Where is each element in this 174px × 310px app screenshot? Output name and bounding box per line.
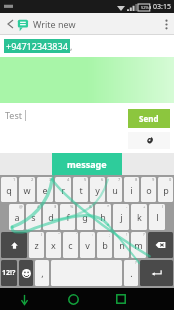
staticText: 6 xyxy=(101,177,104,182)
button[interactable]: . xyxy=(124,260,138,286)
button[interactable]: d xyxy=(43,204,58,230)
button[interactable]: a xyxy=(9,204,24,230)
staticText: % xyxy=(70,204,74,209)
staticText: i xyxy=(130,184,133,196)
staticText: 12!? xyxy=(2,268,16,278)
button[interactable]: p xyxy=(158,177,173,202)
staticText: k xyxy=(137,211,142,223)
staticText: 7 xyxy=(118,177,121,182)
button[interactable]: m xyxy=(131,232,146,258)
button[interactable]: u xyxy=(107,177,122,202)
staticText: Send xyxy=(139,113,159,124)
button[interactable]: , xyxy=(35,260,49,286)
button[interactable]: t xyxy=(73,177,88,202)
button[interactable]: j xyxy=(113,204,129,230)
button[interactable]: s xyxy=(26,204,41,230)
button[interactable]: z xyxy=(29,232,44,258)
staticText: m xyxy=(134,239,143,251)
button[interactable]: c xyxy=(63,232,78,258)
staticText: p xyxy=(163,184,169,196)
staticText: g xyxy=(82,211,88,223)
staticText: q xyxy=(6,184,12,196)
staticText: ? xyxy=(143,232,145,237)
button[interactable]: Back xyxy=(3,17,17,31)
staticText: +94712343834 xyxy=(6,40,68,52)
staticText: ; xyxy=(109,232,111,237)
staticText: Write new xyxy=(33,18,76,30)
staticText: 3 xyxy=(49,177,52,182)
staticText: - xyxy=(126,204,128,209)
button[interactable]: y xyxy=(90,177,105,202)
button[interactable]: w xyxy=(19,177,35,202)
staticText: r xyxy=(61,184,65,196)
button[interactable]: r xyxy=(55,177,71,202)
staticText: " xyxy=(58,232,60,237)
staticText: $ xyxy=(54,204,57,209)
staticText: : xyxy=(92,232,94,237)
staticText: Test xyxy=(5,109,23,121)
button[interactable]: +94712343834 xyxy=(0,35,174,57)
staticText: h xyxy=(100,211,106,223)
staticText: d xyxy=(48,211,54,223)
button[interactable]: f xyxy=(60,204,75,230)
staticText: 5 xyxy=(84,177,87,182)
staticText: e xyxy=(42,184,48,196)
staticText: message xyxy=(67,158,107,170)
staticText: y xyxy=(95,184,100,196)
staticText: x xyxy=(51,239,56,251)
staticText: , xyxy=(70,40,73,52)
button[interactable]: o xyxy=(141,177,156,202)
staticText: z xyxy=(34,239,39,251)
staticText: 03:15 xyxy=(153,2,171,12)
staticText: a xyxy=(14,211,20,223)
staticText: u xyxy=(112,184,118,196)
staticText: * xyxy=(107,204,110,209)
button[interactable]: Send xyxy=(128,109,170,128)
button[interactable]: Home xyxy=(49,288,97,310)
button[interactable]: q xyxy=(1,177,17,202)
staticText: ) xyxy=(41,232,43,237)
button[interactable]: g xyxy=(77,204,93,230)
staticText: # xyxy=(37,204,40,209)
button[interactable]: Attach xyxy=(128,132,170,149)
button[interactable]: Key xyxy=(1,260,17,286)
button[interactable]: Key xyxy=(1,232,27,258)
button[interactable]: More options xyxy=(158,13,174,35)
staticText: b xyxy=(102,239,108,251)
button[interactable]: b xyxy=(97,232,112,258)
button[interactable]: e xyxy=(37,177,53,202)
button[interactable]: Key xyxy=(140,260,173,286)
staticText: ' xyxy=(76,232,77,237)
button[interactable]: l xyxy=(149,204,165,230)
button[interactable]: n xyxy=(114,232,129,258)
staticText: c xyxy=(68,239,73,251)
staticText: ( xyxy=(162,204,164,209)
button[interactable]: h xyxy=(95,204,111,230)
staticText: o xyxy=(146,184,152,196)
staticText: + xyxy=(143,204,146,209)
staticText: 1 xyxy=(13,177,16,182)
button[interactable]: message xyxy=(52,153,122,175)
staticText: 52% xyxy=(141,5,149,10)
button[interactable]: Key xyxy=(19,260,33,286)
staticText: w xyxy=(23,184,31,196)
button[interactable]: x xyxy=(46,232,61,258)
button[interactable]: i xyxy=(124,177,139,202)
staticText: ? xyxy=(135,260,137,265)
button[interactable]: Hide keyboard xyxy=(0,288,49,310)
button[interactable]: v xyxy=(80,232,95,258)
staticText: ! xyxy=(126,232,128,237)
button[interactable]: k xyxy=(131,204,147,230)
button[interactable]: Key xyxy=(148,232,173,258)
staticText: s xyxy=(31,211,36,223)
button[interactable]: Recent apps xyxy=(97,288,145,310)
staticText: 9 xyxy=(152,177,155,182)
staticText: @ xyxy=(19,204,23,209)
staticText: & xyxy=(89,204,92,209)
staticText: l xyxy=(156,211,159,223)
staticText: 8 xyxy=(135,177,138,182)
staticText: , xyxy=(41,267,44,279)
staticText: j xyxy=(120,211,123,223)
staticText: . xyxy=(130,267,133,279)
